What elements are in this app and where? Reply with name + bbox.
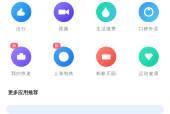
button[interactable]: 新 <box>42 43 85 76</box>
staticText: 口碑外卖 <box>139 26 159 32</box>
button[interactable]: 运动健康 <box>127 43 170 76</box>
button[interactable]: 口碑外卖 <box>127 0 170 32</box>
button[interactable]: 出行 <box>0 0 42 32</box>
staticText: 视频 <box>59 26 69 32</box>
button[interactable]: 视频 <box>42 0 85 32</box>
button[interactable]: 新 <box>0 43 42 76</box>
staticText: 我的快递 <box>11 71 31 76</box>
staticText: 蚂蚁庄园 <box>96 71 116 76</box>
staticText: 运动健康 <box>139 71 159 76</box>
button[interactable]: 蚂蚁庄园 <box>85 43 127 76</box>
staticText: 新 <box>12 43 16 48</box>
staticText: 更多应用推荐 <box>8 89 38 96</box>
staticText: 出行 <box>16 26 26 32</box>
staticText: 生活缴费 <box>96 26 116 32</box>
staticText: 新 <box>55 43 59 48</box>
button[interactable]: 生活缴费 <box>85 0 127 32</box>
staticText: 上海地铁 <box>54 71 74 76</box>
